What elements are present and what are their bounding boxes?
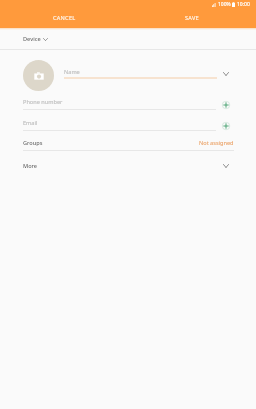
button[interactable]: Expand name	[218, 66, 233, 81]
button[interactable]: Add photo	[23, 60, 54, 91]
staticText: 100%	[218, 1, 231, 8]
staticText: Name	[64, 68, 80, 76]
button[interactable]: CANCEL	[0, 4, 128, 32]
button[interactable]: More	[0, 158, 256, 174]
staticText: Not assigned	[199, 139, 234, 147]
staticText: Email	[23, 119, 38, 127]
staticText: SAVE	[185, 14, 199, 22]
button[interactable]: Device	[0, 28, 256, 49]
staticText: Phone number	[23, 98, 63, 106]
staticText: More	[23, 162, 38, 170]
button[interactable]: Groups	[0, 135, 256, 151]
button[interactable]: SAVE	[128, 4, 256, 32]
staticText: Device	[23, 35, 41, 43]
staticText: Groups	[23, 139, 43, 147]
button[interactable]: Add Phone number	[218, 97, 233, 112]
staticText: CANCEL	[53, 14, 76, 22]
staticText: 10:00	[237, 1, 250, 8]
button[interactable]: Add Email	[218, 118, 233, 133]
